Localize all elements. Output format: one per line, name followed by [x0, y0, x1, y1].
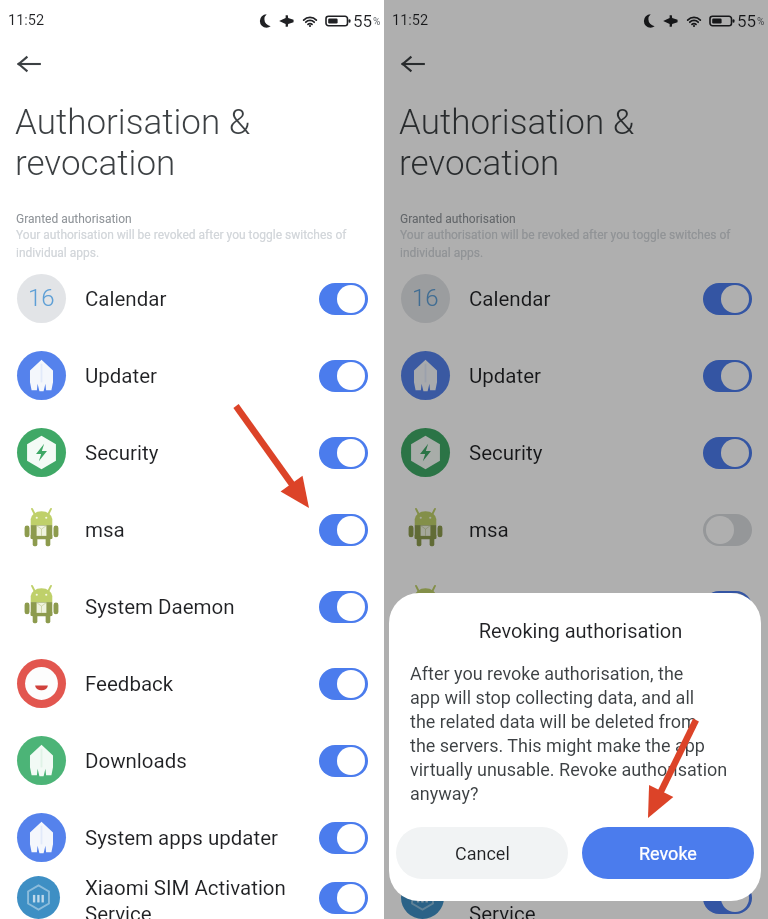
- button[interactable]: 16: [384, 260, 768, 337]
- button[interactable]: Toggle: [703, 591, 752, 623]
- staticText: msa: [85, 518, 125, 542]
- staticText: 16: [412, 284, 439, 312]
- button[interactable]: Cancel: [396, 827, 568, 879]
- button[interactable]: System Daemon: [0, 568, 384, 645]
- button[interactable]: Downloads: [0, 722, 384, 799]
- button[interactable]: Toggle: [319, 591, 368, 623]
- staticText: Feedback: [469, 672, 558, 696]
- staticText: Revoke: [639, 843, 697, 864]
- staticText: System Daemon: [85, 595, 235, 619]
- button[interactable]: 16: [0, 260, 384, 337]
- staticText: Xiaomi SIM Activation Service: [469, 876, 697, 919]
- button[interactable]: Xiaomi SIM Activation Service: [384, 876, 768, 919]
- staticText: Cancel: [455, 843, 510, 864]
- staticText: Revoking authorisation: [410, 619, 751, 642]
- button[interactable]: Toggle: [703, 882, 752, 914]
- button[interactable]: Back: [394, 45, 432, 83]
- button[interactable]: Toggle: [319, 514, 368, 546]
- staticText: Calendar: [469, 287, 551, 311]
- staticText: 11:52: [392, 12, 429, 29]
- button[interactable]: Toggle: [319, 360, 368, 392]
- staticText: Downloads: [85, 749, 187, 773]
- staticText: Authorisation &: [399, 102, 635, 143]
- staticText: Feedback: [85, 672, 174, 696]
- button[interactable]: Security: [0, 414, 384, 491]
- button[interactable]: Toggle: [703, 745, 752, 777]
- button[interactable]: msa: [384, 491, 768, 568]
- button[interactable]: Toggle: [319, 822, 368, 854]
- button[interactable]: Toggle: [703, 360, 752, 392]
- staticText: Updater: [469, 364, 542, 388]
- staticText: %: [373, 16, 381, 28]
- button[interactable]: Security: [384, 414, 768, 491]
- button[interactable]: Toggle: [319, 745, 368, 777]
- staticText: Granted authorisation: [400, 212, 516, 226]
- staticText: Updater: [85, 364, 158, 388]
- staticText: System apps updater: [85, 826, 278, 850]
- button[interactable]: Downloads: [384, 722, 768, 799]
- button[interactable]: System apps updater: [384, 799, 768, 876]
- button[interactable]: Revoke: [582, 827, 754, 879]
- staticText: Downloads: [469, 749, 571, 773]
- staticText: msa: [469, 518, 509, 542]
- staticText: 11:52: [8, 12, 45, 29]
- staticText: Calendar: [85, 287, 167, 311]
- button[interactable]: Xiaomi SIM Activation Service: [0, 876, 384, 919]
- button[interactable]: msa: [0, 491, 384, 568]
- button[interactable]: Updater: [0, 337, 384, 414]
- button[interactable]: Toggle: [703, 283, 752, 315]
- button[interactable]: Toggle: [703, 514, 752, 546]
- button[interactable]: Updater: [384, 337, 768, 414]
- staticText: 55: [353, 11, 373, 31]
- button[interactable]: Toggle: [703, 437, 752, 469]
- staticText: Xiaomi SIM Activation Service: [85, 876, 313, 919]
- staticText: Your authorisation will be revoked after…: [400, 228, 754, 260]
- button[interactable]: Toggle: [319, 882, 368, 914]
- staticText: revocation: [15, 143, 176, 184]
- button[interactable]: Feedback: [0, 645, 384, 722]
- button[interactable]: System apps updater: [0, 799, 384, 876]
- staticText: 55: [737, 11, 757, 31]
- staticText: Your authorisation will be revoked after…: [16, 228, 370, 260]
- button[interactable]: Toggle: [319, 283, 368, 315]
- staticText: 16: [28, 284, 55, 312]
- staticText: Security: [85, 441, 159, 465]
- button[interactable]: Toggle: [319, 668, 368, 700]
- staticText: revocation: [399, 143, 560, 184]
- button[interactable]: System Daemon: [384, 568, 768, 645]
- button[interactable]: Feedback: [384, 645, 768, 722]
- staticText: Granted authorisation: [16, 212, 132, 226]
- button[interactable]: Toggle: [703, 822, 752, 854]
- staticText: After you revoke authorisation, the app …: [410, 663, 728, 804]
- button[interactable]: Toggle: [319, 437, 368, 469]
- button[interactable]: Back: [10, 45, 48, 83]
- staticText: %: [757, 16, 765, 28]
- staticText: System apps updater: [469, 826, 662, 850]
- staticText: Authorisation &: [15, 102, 251, 143]
- staticText: Security: [469, 441, 543, 465]
